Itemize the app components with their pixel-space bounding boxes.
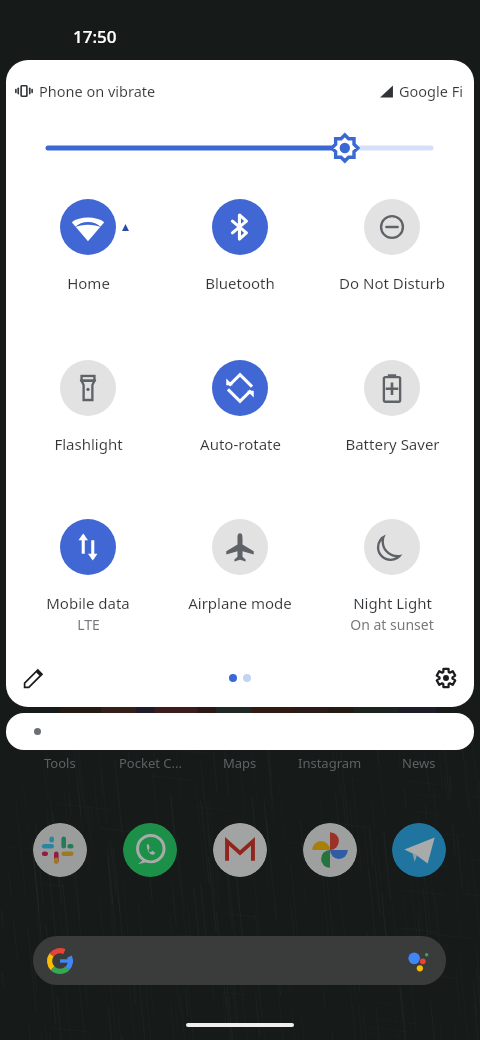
button[interactable]: Airplane mode bbox=[164, 519, 316, 613]
staticText: Phone on vibrate bbox=[39, 81, 156, 101]
button[interactable]: Search bbox=[33, 936, 446, 985]
staticText: Do Not Disturb bbox=[339, 273, 445, 293]
button[interactable]: Auto-rotate bbox=[164, 360, 316, 454]
staticText: Home bbox=[67, 273, 110, 293]
staticText: Flashlight bbox=[54, 434, 123, 454]
staticText: Pocket C... bbox=[119, 754, 182, 772]
button[interactable]: Battery Saver bbox=[316, 360, 468, 454]
button[interactable]: Do Not Disturb bbox=[316, 199, 468, 293]
button[interactable]: Flashlight bbox=[12, 360, 164, 454]
staticText: Instagram bbox=[298, 754, 362, 772]
button[interactable]: Bluetooth bbox=[164, 199, 316, 293]
button[interactable]: Telegram bbox=[392, 823, 446, 877]
staticText: 17:50 bbox=[73, 25, 117, 48]
staticText: Battery Saver bbox=[345, 434, 440, 454]
staticText: Tools bbox=[44, 754, 76, 772]
staticText: Auto-rotate bbox=[200, 434, 281, 454]
button[interactable]: Settings bbox=[424, 656, 468, 700]
button[interactable]: Home bbox=[12, 199, 164, 293]
staticText: On at sunset bbox=[350, 615, 434, 634]
button[interactable]: Slack bbox=[33, 823, 87, 877]
button[interactable]: Google Photos bbox=[303, 823, 357, 877]
staticText: News bbox=[402, 754, 436, 772]
staticText: Airplane mode bbox=[188, 593, 292, 613]
staticText: Night Light bbox=[353, 593, 432, 613]
staticText: Mobile data bbox=[46, 593, 130, 613]
button[interactable]: Edit tiles bbox=[12, 656, 56, 700]
button[interactable]: Gmail bbox=[213, 823, 267, 877]
button[interactable]: WhatsApp bbox=[123, 823, 177, 877]
button[interactable]: Night Light bbox=[316, 519, 468, 634]
button[interactable] bbox=[6, 713, 474, 750]
staticText: LTE bbox=[77, 615, 100, 634]
staticText: Google Fi bbox=[399, 81, 463, 101]
staticText: Maps bbox=[223, 754, 257, 772]
button[interactable]: Mobile data bbox=[12, 519, 164, 634]
staticText: Bluetooth bbox=[205, 273, 275, 293]
